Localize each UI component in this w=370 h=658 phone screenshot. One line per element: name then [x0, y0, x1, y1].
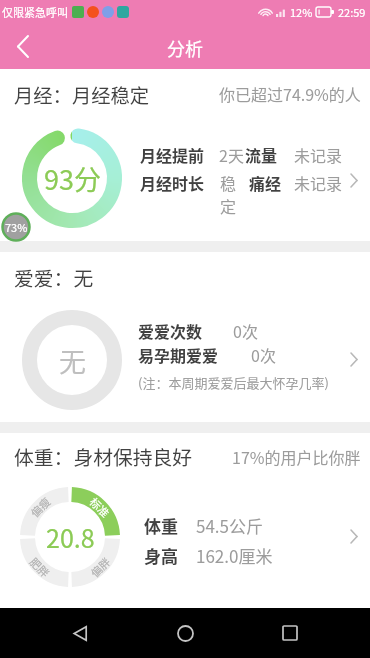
staticText: 0次 — [251, 343, 276, 366]
staticText: 身高 — [144, 543, 178, 568]
staticText: 未记录 — [294, 171, 343, 194]
staticText: 爱爱次数 — [138, 319, 203, 342]
staticText: 17%的用户比你胖 — [232, 445, 361, 468]
staticText: 0次 — [233, 319, 258, 342]
staticText: 20.8 — [46, 519, 95, 555]
staticText: 月经：月经稳定 — [14, 81, 150, 109]
button[interactable]: 月经：月经稳定 — [0, 69, 370, 241]
button[interactable]: 体重：身材保持良好 — [0, 433, 370, 608]
staticText: 体重 — [144, 513, 178, 538]
staticText: 月经提前 — [140, 143, 205, 166]
staticText: (注：本周期爱爱后最大怀孕几率) — [138, 373, 329, 392]
button[interactable]: 爱爱：无 — [0, 252, 370, 422]
button[interactable]: Recent apps — [265, 608, 315, 658]
staticText: 22:59 — [338, 4, 366, 20]
staticText: 73% — [5, 219, 28, 235]
button[interactable]: Home — [160, 608, 210, 658]
staticText: 162.0厘米 — [196, 543, 273, 568]
staticText: 标准 — [87, 494, 113, 520]
staticText: 流量 — [245, 143, 278, 166]
button[interactable]: Back — [55, 608, 105, 658]
staticText: 54.5公斤 — [196, 513, 264, 538]
staticText: 12% — [290, 4, 313, 20]
staticText: 爱爱：无 — [14, 263, 94, 292]
button[interactable]: Back — [0, 24, 45, 69]
staticText: 偏瘦 — [27, 494, 53, 520]
staticText: 仅限紧急呼叫 — [2, 4, 68, 20]
staticText: 你已超过74.9%的人 — [219, 82, 361, 105]
staticText: 月经时长 — [140, 171, 205, 194]
staticText: 易孕期爱爱 — [138, 343, 219, 366]
staticText: 93分 — [44, 159, 101, 198]
staticText: 肥胖 — [27, 554, 53, 580]
staticText: 无 — [59, 341, 86, 380]
staticText: 2天 — [219, 143, 244, 166]
staticText: 稳定 — [220, 171, 239, 217]
staticText: 偏胖 — [87, 554, 113, 580]
staticText: 未记录 — [294, 143, 343, 166]
staticText: 痛经 — [249, 171, 282, 194]
staticText: 分析 — [167, 35, 203, 61]
staticText: 体重：身材保持良好 — [14, 442, 193, 471]
